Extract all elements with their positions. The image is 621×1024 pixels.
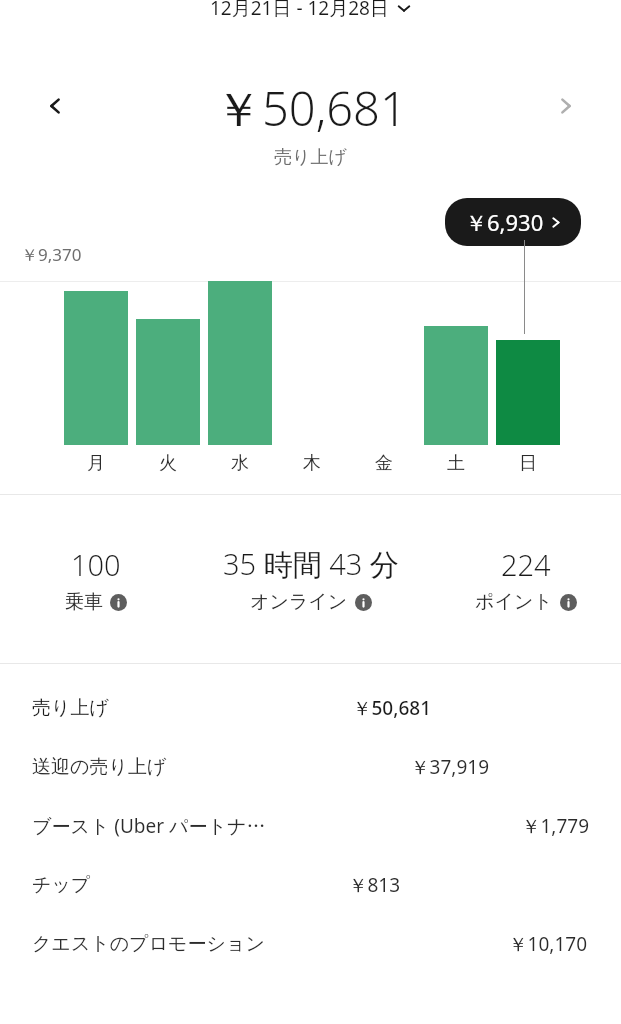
button[interactable]: Previous week: [33, 84, 77, 128]
staticText: 売り上げ: [32, 696, 109, 720]
button[interactable]: クエストのプロモーション: [0, 914, 621, 973]
staticText: ￥813: [348, 872, 400, 898]
staticText: 売り上げ: [274, 146, 347, 169]
button[interactable]: 売り上げ: [0, 678, 621, 737]
staticText: 日: [519, 452, 537, 475]
staticText: クエストのプロモーション: [32, 932, 265, 956]
button[interactable]: 224: [430, 545, 621, 614]
button[interactable]: ブースト (Uber パートナー プロモーショ…: [0, 796, 621, 855]
button[interactable]: チップ: [0, 855, 621, 914]
staticText: ￥1,779: [521, 813, 589, 839]
staticText: 35 時間 43 分: [223, 544, 399, 584]
staticText: ￥10,170: [508, 931, 587, 957]
staticText: 12月21日 - 12月28日: [210, 0, 389, 21]
staticText: 金: [375, 452, 393, 475]
staticText: 224: [501, 545, 551, 584]
button[interactable]: 35 時間 43 分: [191, 544, 430, 614]
staticText: ￥50,681: [352, 695, 431, 721]
staticText: ￥37,919: [410, 754, 489, 780]
staticText: 100: [71, 545, 121, 584]
staticText: 木: [303, 452, 321, 475]
staticText: ￥50,681: [215, 76, 407, 140]
staticText: チップ: [32, 873, 91, 897]
button[interactable]: 100: [0, 545, 191, 614]
staticText: 水: [231, 452, 249, 475]
button[interactable]: Next week: [544, 84, 588, 128]
staticText: 乗車: [65, 590, 103, 614]
staticText: 送迎の売り上げ: [32, 755, 167, 779]
staticText: オンライン: [250, 590, 348, 614]
button[interactable]: ￥6,930: [445, 198, 581, 246]
staticText: ￥9,370: [21, 243, 82, 266]
button[interactable]: 12月21日 - 12月28日: [184, 0, 437, 30]
staticText: ￥6,930: [465, 207, 544, 237]
button[interactable]: 送迎の売り上げ: [0, 737, 621, 796]
staticText: 土: [447, 452, 465, 475]
staticText: 月: [87, 452, 105, 475]
staticText: 火: [159, 452, 177, 475]
staticText: ブースト (Uber パートナー プロモーショ…: [32, 813, 272, 839]
staticText: ポイント: [475, 590, 553, 614]
